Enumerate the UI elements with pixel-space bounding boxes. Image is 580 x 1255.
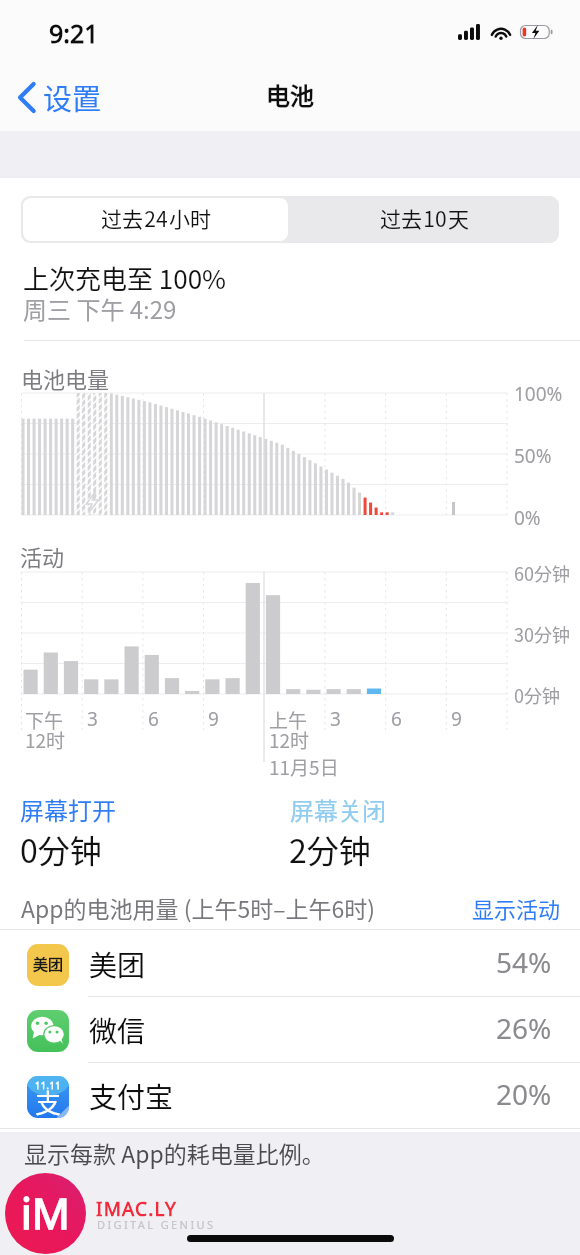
staticText: 美团 — [33, 953, 64, 975]
staticText: 54% — [496, 943, 552, 981]
staticText: 12时 — [25, 726, 66, 754]
button[interactable]: 设置 — [16, 70, 104, 124]
button[interactable]: 过去 24 小时 — [23, 198, 288, 241]
staticText: 支付宝 — [89, 1076, 174, 1117]
staticText: 100% — [514, 381, 563, 407]
staticText: 周三 下午 4:29 — [23, 291, 177, 326]
staticText: 30分钟 — [514, 621, 570, 647]
button[interactable]: 显示活动 — [472, 892, 561, 924]
staticText: IMAC.LY — [96, 1196, 178, 1222]
staticText: 0% — [514, 505, 541, 531]
staticText: 过去 10 天 — [380, 203, 469, 233]
staticText: 下午 — [25, 706, 64, 734]
staticText: 显示活动 — [472, 892, 561, 924]
staticText: 20% — [496, 1075, 552, 1113]
staticText: 电池 — [266, 77, 314, 112]
staticText: 支 — [35, 1083, 62, 1118]
staticText: 上午 — [269, 706, 308, 734]
staticText: 3 — [87, 706, 98, 732]
staticText: 6 — [391, 706, 402, 732]
staticText: 26% — [496, 1009, 552, 1047]
staticText: iM — [21, 1184, 70, 1241]
button[interactable]: 11.11 — [0, 1062, 580, 1128]
staticText: 50% — [514, 443, 552, 469]
staticText: 12时 — [269, 726, 310, 754]
staticText: 微信 — [89, 1010, 146, 1051]
staticText: 6 — [148, 706, 159, 732]
staticText: 60分钟 — [514, 560, 570, 586]
button[interactable]: 美团 — [0, 930, 580, 996]
staticText: 显示每款 App的耗电量比例。 — [24, 1136, 325, 1169]
staticText: 上次充电至 100% — [23, 259, 227, 297]
staticText: 屏幕打开 — [20, 792, 116, 827]
staticText: 3 — [330, 706, 341, 732]
staticText: 11.11 — [35, 1079, 62, 1091]
staticText: 9:21 — [49, 16, 99, 50]
button[interactable]: 过去 10 天 — [290, 196, 559, 243]
staticText: 0分钟 — [514, 682, 560, 708]
staticText: App的电池用量 (上午5时–上午6时) — [21, 891, 376, 924]
button[interactable]: 微信 — [0, 996, 580, 1062]
staticText: 美团 — [89, 944, 146, 985]
staticText: 0分钟 — [20, 826, 102, 872]
staticText: 9 — [451, 706, 462, 732]
staticText: 过去 24 小时 — [101, 203, 211, 233]
staticText: DIGITAL GENIUS — [97, 1217, 216, 1232]
staticText: 活动 — [20, 540, 65, 572]
staticText: 电池电量 — [21, 362, 110, 394]
staticText: 设置 — [43, 76, 102, 118]
staticText: 屏幕关闭 — [290, 792, 386, 827]
staticText: 2分钟 — [289, 826, 371, 872]
staticText: 11月5日 — [269, 753, 339, 781]
staticText: 9 — [208, 706, 219, 732]
